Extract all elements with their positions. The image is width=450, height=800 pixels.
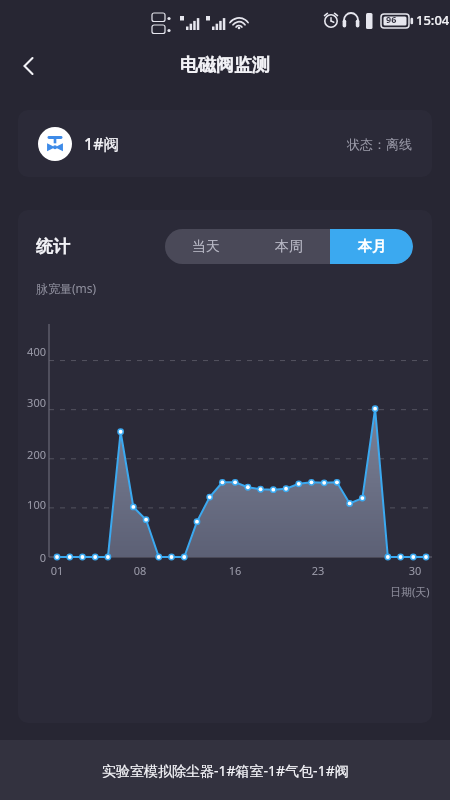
staticText: 300 — [18, 395, 46, 410]
staticText: 400 — [18, 344, 46, 359]
staticText: 30 — [402, 563, 428, 578]
button[interactable]: 当天 — [165, 229, 247, 264]
staticText: 01 — [44, 563, 70, 578]
staticText: 日期(天) — [390, 584, 430, 599]
staticText: 状态：离线 — [347, 136, 412, 152]
staticText: 脉宽量(ms) — [36, 280, 97, 296]
staticText: 200 — [18, 447, 46, 462]
staticText: 电磁阀监测 — [180, 54, 270, 77]
staticText: 统计 — [36, 236, 70, 257]
staticText: 本月 — [358, 238, 386, 256]
staticText: 23 — [305, 563, 331, 578]
button[interactable]: 本月 — [330, 229, 413, 264]
staticText: 08 — [127, 563, 153, 578]
staticText: 1#阀 — [84, 133, 120, 155]
staticText: 0 — [18, 550, 46, 565]
button[interactable]: 1#阀 — [18, 110, 432, 177]
staticText: 当天 — [192, 238, 220, 256]
staticText: 实验室模拟除尘器-1#箱室-1#气包-1#阀 — [102, 761, 349, 780]
button[interactable]: 本周 — [247, 229, 330, 264]
staticText: 100 — [18, 497, 46, 512]
button[interactable]: Back — [8, 45, 50, 87]
staticText: 16 — [222, 563, 248, 578]
staticText: 本周 — [275, 238, 303, 256]
staticText: 96 — [386, 13, 397, 25]
staticText: 15:04 — [416, 11, 450, 29]
